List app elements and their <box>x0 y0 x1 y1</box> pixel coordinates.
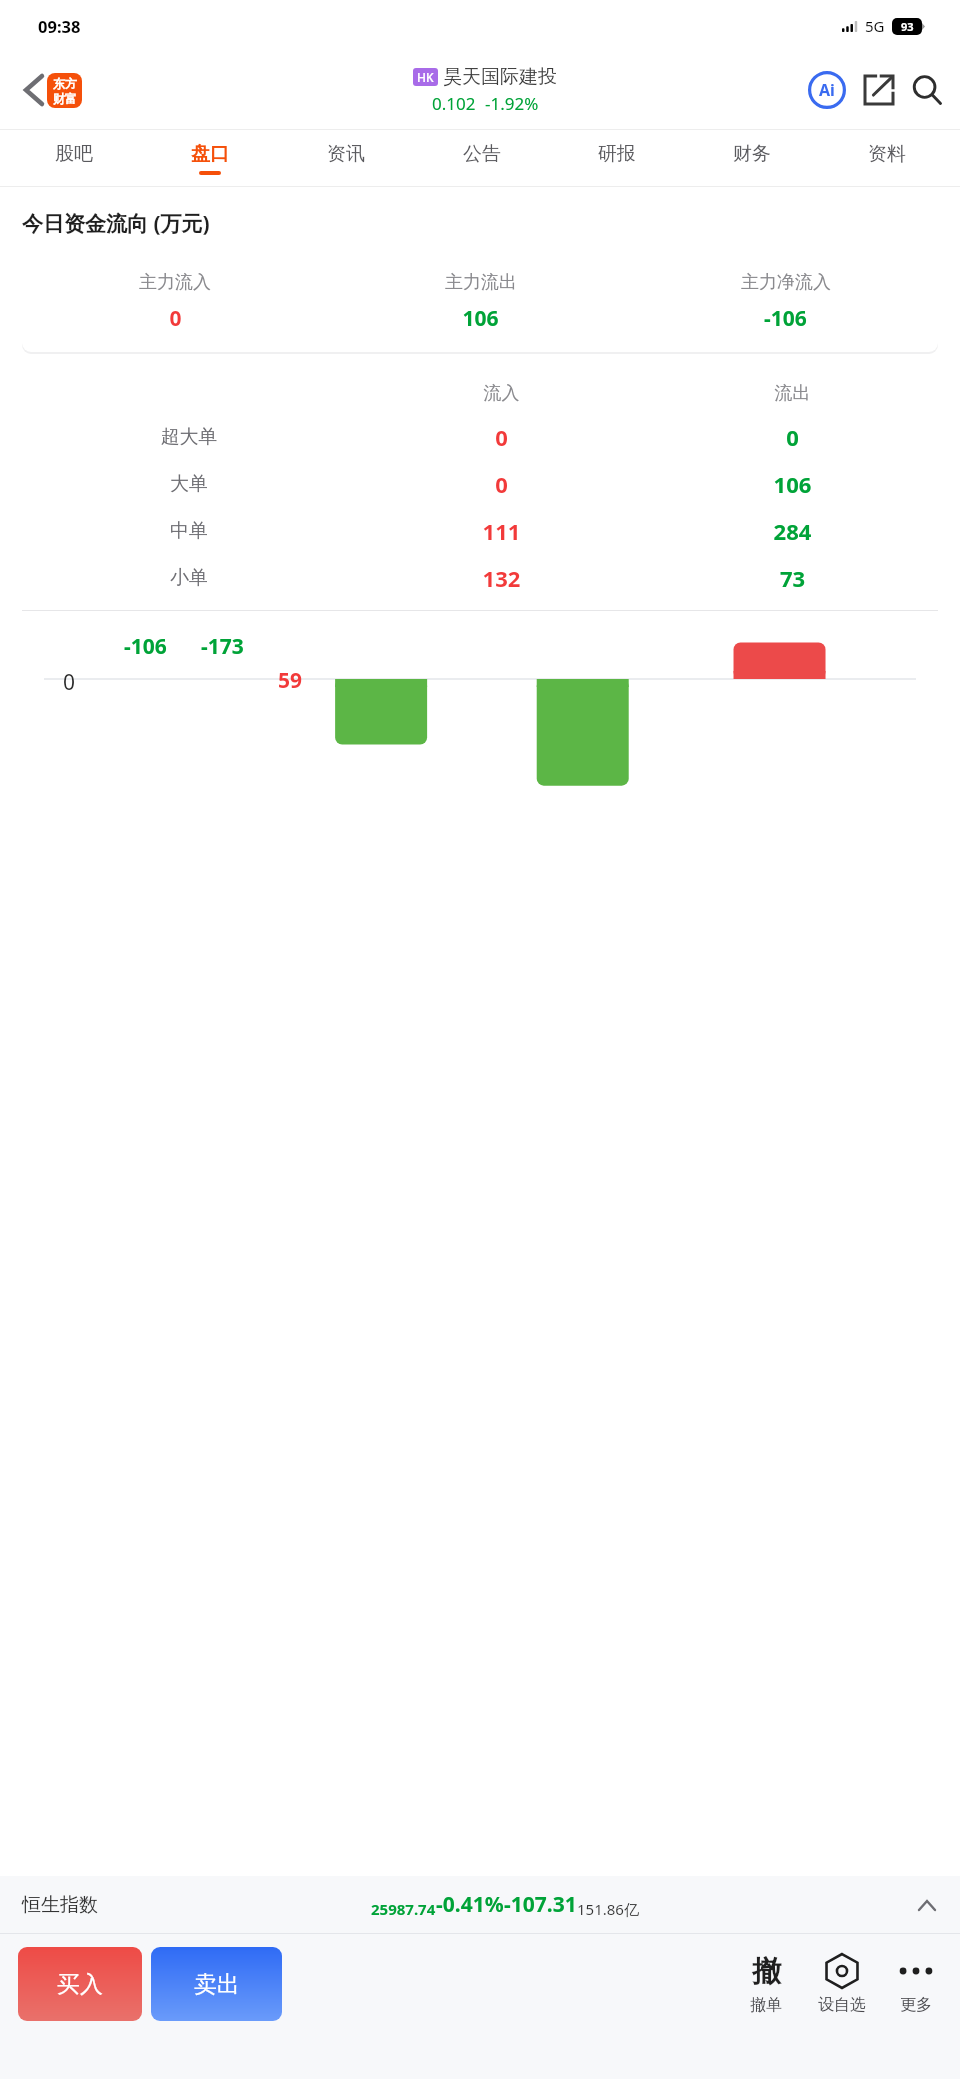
button[interactable]: 资讯 <box>278 130 414 186</box>
staticText: -106 <box>764 304 807 333</box>
button[interactable]: 盘口 <box>142 130 278 186</box>
button[interactable]: 卖出 <box>151 1947 282 2021</box>
staticText: 106 <box>647 469 938 499</box>
staticText: 59 <box>278 666 303 695</box>
staticText: -107.31 <box>504 1890 577 1919</box>
button[interactable]: 研报 <box>549 130 684 186</box>
staticText: -1.92% <box>485 92 539 115</box>
staticText: 主力流出 <box>445 271 517 294</box>
button[interactable]: Back <box>14 70 54 110</box>
staticText: 买入 <box>57 1970 103 1999</box>
staticText: -173 <box>201 632 244 661</box>
button[interactable]: 恒生指数 <box>0 1876 960 1933</box>
button[interactable]: 公告 <box>414 130 549 186</box>
staticText: 撤单 <box>750 1995 782 2015</box>
staticText: 中单 <box>22 519 356 543</box>
button[interactable]: 设自选 <box>812 1947 872 2015</box>
button[interactable]: Share <box>856 67 902 113</box>
staticText: 卖出 <box>194 1970 240 1999</box>
staticText: -106 <box>124 632 167 661</box>
button[interactable]: Search <box>904 67 950 113</box>
staticText: 财富 <box>53 91 77 106</box>
staticText: 股吧 <box>55 142 93 166</box>
staticText: 资讯 <box>327 142 365 166</box>
button[interactable]: AI assistant <box>804 67 850 113</box>
staticText: 今日资金流向 (万元) <box>22 209 210 238</box>
button[interactable]: 超大单 <box>22 422 938 452</box>
staticText: 主力流入 <box>139 271 211 294</box>
staticText: 设自选 <box>818 1995 866 2015</box>
staticText: 主力净流入 <box>741 271 831 294</box>
staticText: 恒生指数 <box>22 1893 98 1917</box>
staticText: 盘口 <box>191 142 229 166</box>
button[interactable]: 资料 <box>819 130 954 186</box>
staticText: 公告 <box>463 142 501 166</box>
staticText: -0.41% <box>436 1890 504 1919</box>
staticText: 5G <box>865 16 885 36</box>
staticText: 0 <box>169 304 182 333</box>
staticText: HK <box>417 69 434 85</box>
staticText: 东方 <box>53 76 77 91</box>
button[interactable]: 买入 <box>18 1947 142 2021</box>
button[interactable]: 股吧 <box>6 130 142 186</box>
staticText: 93 <box>901 19 914 34</box>
other: Expand index panel <box>912 1890 942 1920</box>
button[interactable]: 财务 <box>684 130 819 186</box>
button[interactable]: 大单 <box>22 469 938 499</box>
staticText: 撤 <box>752 1953 781 1990</box>
staticText: 0 <box>356 422 647 452</box>
staticText: Ai <box>819 79 835 101</box>
staticText: 超大单 <box>22 425 356 449</box>
staticText: 0 <box>356 469 647 499</box>
staticText: 0.102 <box>432 92 476 115</box>
staticText: 大单 <box>22 472 356 496</box>
button[interactable]: 更多 <box>886 1947 946 2015</box>
staticText: 资料 <box>868 142 906 166</box>
staticText: 284 <box>647 516 938 546</box>
staticText: 更多 <box>900 1995 932 2015</box>
staticText: 流入 <box>356 382 647 405</box>
staticText: 111 <box>356 516 647 546</box>
staticText: 0 <box>63 668 76 697</box>
button[interactable]: East Money home <box>47 73 82 108</box>
staticText: 流出 <box>647 382 938 405</box>
button[interactable]: 小单 <box>22 563 938 593</box>
staticText: 小单 <box>22 566 356 590</box>
staticText: 09:38 <box>38 15 81 37</box>
staticText: 25987.74 <box>371 1899 436 1919</box>
staticText: 151.86亿 <box>577 1899 639 1919</box>
staticText: 132 <box>356 563 647 593</box>
staticText: 财务 <box>733 142 771 166</box>
button[interactable]: 中单 <box>22 516 938 546</box>
button[interactable]: 撤 <box>736 1947 796 2015</box>
staticText: 0 <box>647 422 938 452</box>
staticText: 106 <box>462 304 499 333</box>
staticText: 昊天国际建投 <box>443 65 557 89</box>
staticText: 研报 <box>598 142 636 166</box>
staticText: 73 <box>647 563 938 593</box>
